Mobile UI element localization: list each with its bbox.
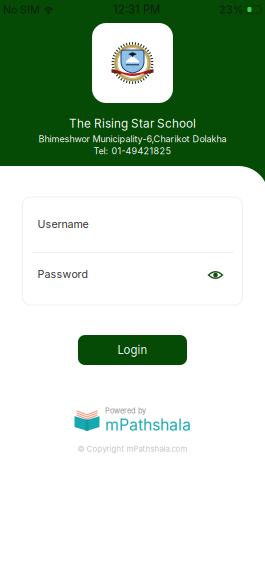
staticText: © Copyright mPathshala.com: [77, 444, 187, 454]
staticText: 12:31 PM: [113, 3, 160, 16]
button[interactable]: Password: [22, 254, 242, 294]
staticText: mPathshala: [105, 415, 191, 434]
button[interactable]: Login: [78, 335, 187, 365]
staticText: No SIM: [3, 3, 40, 16]
staticText: Username: [37, 217, 88, 230]
staticText: The Rising Star School: [69, 116, 196, 131]
staticText: 23%: [219, 3, 243, 16]
staticText: Login: [117, 343, 147, 357]
staticText: Tel: 01-49421825: [93, 145, 171, 156]
staticText: Password: [37, 267, 88, 280]
staticText: Powered by: [105, 406, 146, 415]
button[interactable]: Show password: [202, 264, 228, 286]
button[interactable]: Username: [22, 196, 242, 251]
staticText: Bhimeshwor Municipality-6,Charikot Dolak…: [38, 133, 226, 144]
